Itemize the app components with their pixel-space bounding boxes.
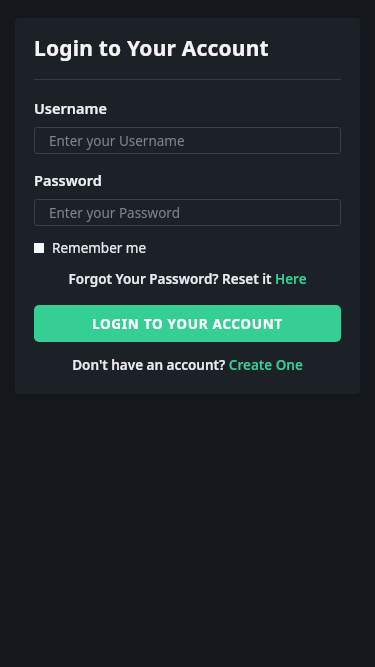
staticText: Forgot Your Password? Reset it Here (68, 270, 307, 288)
staticText: Password (34, 170, 102, 190)
staticText: Username (34, 98, 107, 118)
button[interactable]: LOGIN TO YOUR ACCOUNT (34, 305, 341, 342)
staticText: LOGIN TO YOUR ACCOUNT (92, 315, 283, 333)
staticText: Remember me (52, 239, 147, 257)
staticText: Don't have an account? Create One (72, 356, 303, 374)
staticText: Enter your Username (49, 132, 185, 150)
button[interactable]: Don't have an account? Create One (34, 356, 341, 374)
staticText: Login to Your Account (34, 34, 269, 63)
button[interactable]: Enter your Password (34, 199, 341, 226)
staticText: Enter your Password (49, 204, 180, 222)
button[interactable]: Remember me (34, 239, 147, 257)
button[interactable]: Forgot Your Password? Reset it Here (34, 270, 341, 288)
button[interactable]: Enter your Username (34, 127, 341, 154)
